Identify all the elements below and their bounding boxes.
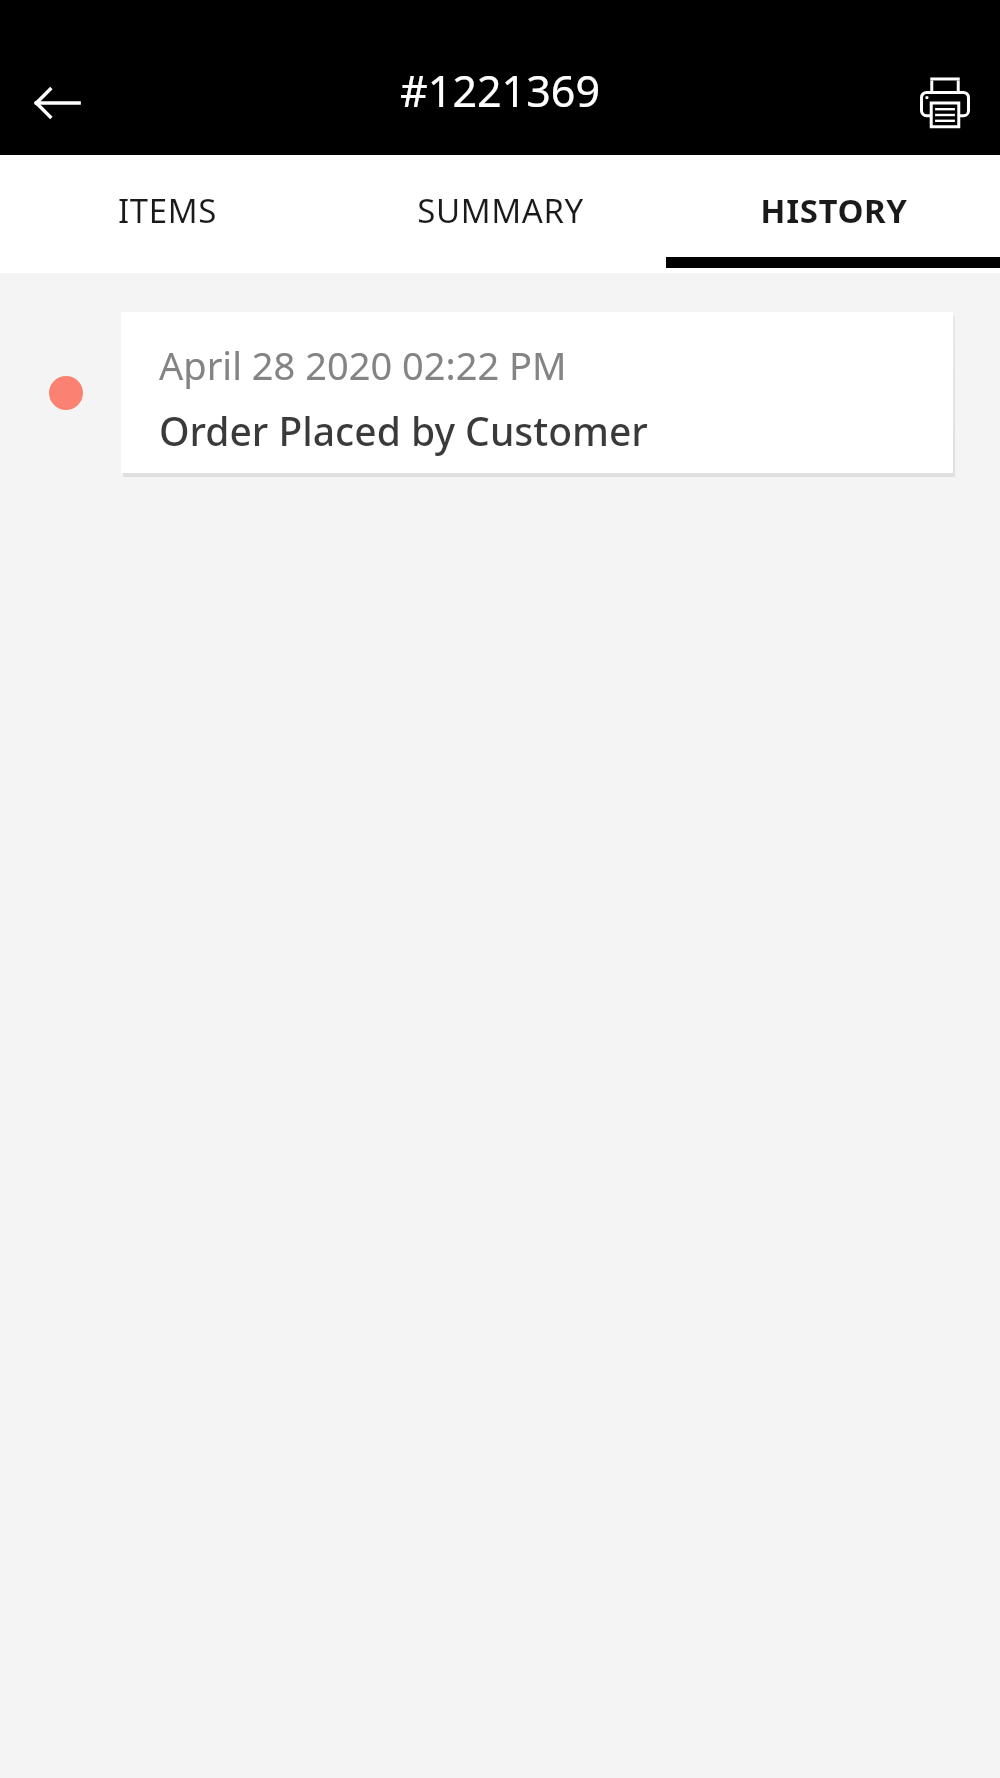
button[interactable]: HISTORY — [667, 155, 1000, 273]
staticText: SUMMARY — [417, 188, 584, 233]
button[interactable]: April 28 2020 02:22 PM — [121, 312, 953, 473]
button[interactable]: ITEMS — [0, 155, 334, 273]
staticText: #1221369 — [400, 61, 600, 120]
staticText: ITEMS — [118, 188, 217, 233]
staticText: HISTORY — [760, 188, 908, 233]
button[interactable]: SUMMARY — [334, 155, 667, 273]
button[interactable]: Back — [20, 65, 96, 141]
button[interactable]: Print — [905, 63, 985, 143]
staticText: Order Placed by Customer — [159, 404, 648, 457]
staticText: April 28 2020 02:22 PM — [159, 339, 567, 391]
